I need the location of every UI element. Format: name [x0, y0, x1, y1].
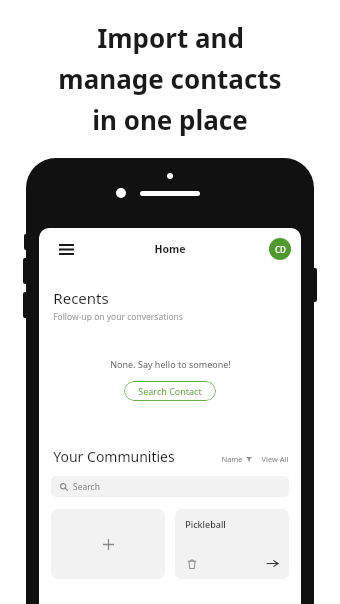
staticText: None. Say hello to someone!	[110, 358, 231, 370]
button[interactable]: Pickleball	[175, 509, 289, 579]
button[interactable]: Open	[266, 557, 279, 570]
staticText: Import and	[97, 20, 244, 55]
staticText: Search	[73, 481, 100, 493]
button[interactable]: Search Contact	[124, 381, 216, 401]
staticText: Search Contact	[138, 385, 202, 397]
button[interactable]: View All	[261, 454, 289, 466]
staticText: Your Communities	[53, 447, 175, 466]
button[interactable]: Search	[51, 476, 289, 497]
staticText: View All	[261, 454, 289, 464]
button[interactable]: Name	[221, 454, 252, 466]
button[interactable]: Menu	[53, 236, 79, 262]
staticText: Name	[221, 454, 243, 464]
button[interactable]: Delete	[185, 557, 198, 570]
button[interactable]: CD	[269, 238, 291, 260]
staticText: Recents	[53, 288, 109, 308]
button[interactable]: Add community	[51, 509, 165, 579]
staticText: manage contacts	[58, 61, 282, 96]
staticText: Pickleball	[185, 518, 226, 530]
staticText: Home	[154, 242, 186, 256]
staticText: in one place	[92, 102, 248, 137]
staticText: Follow-up on your conversations	[53, 311, 183, 323]
staticText: CD	[275, 244, 286, 255]
